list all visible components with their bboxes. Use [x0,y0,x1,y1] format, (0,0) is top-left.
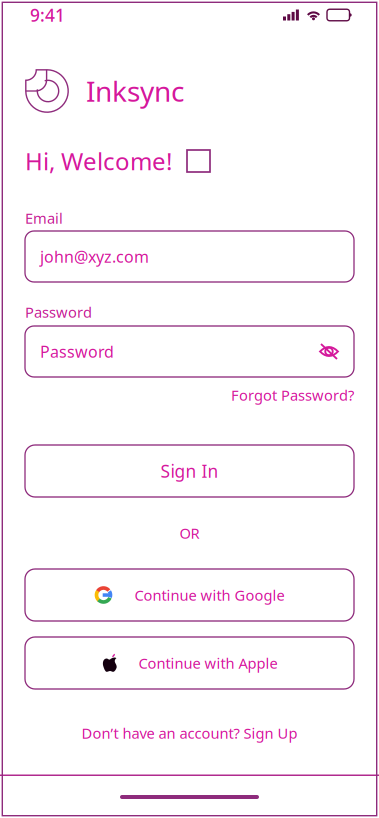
staticText: 9:41 [30,3,65,26]
staticText: Email [25,208,63,228]
staticText: Hi, Welcome! [25,145,172,177]
staticText: Inksync [86,72,184,110]
staticText: OR [179,523,199,543]
staticText: john@xyz.com [40,246,149,267]
button[interactable]: Don’t have an account? Sign Up [81,723,297,743]
staticText: Forgot Password? [231,385,354,405]
staticText: Don’t have an account? Sign Up [81,723,297,743]
staticText: Continue with Google [134,585,284,605]
staticText: Password [40,341,114,362]
staticText: Sign In [160,459,218,482]
button[interactable]: Sign In [25,445,354,497]
button[interactable]: Continue with Google [25,569,354,621]
staticText: Continue with Apple [138,653,277,673]
button[interactable]: Continue with Apple [25,637,354,689]
button[interactable]: Forgot Password? [231,385,354,405]
staticText: Password [25,302,92,322]
button[interactable]: Show password [319,342,339,360]
